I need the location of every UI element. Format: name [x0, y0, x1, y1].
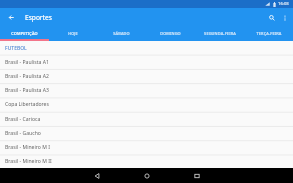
button[interactable]: Copa Libertadores — [0, 97, 293, 111]
button[interactable]: Brasil - Carioca — [0, 112, 293, 126]
staticText: Brasil - Paulista A1 — [5, 59, 49, 66]
button[interactable]: Back — [89, 168, 104, 183]
staticText: SEGUNDA-FEIRA — [204, 31, 236, 36]
button[interactable]: TERÇA-FEIRA — [244, 26, 293, 41]
staticText: HOJE — [68, 31, 78, 36]
staticText: COMPETIÇÃO — [11, 31, 38, 36]
button[interactable]: SÁBADO — [97, 26, 146, 41]
staticText: FUTEBOL — [5, 45, 27, 52]
staticText: SÁBADO — [113, 31, 130, 36]
staticText: DOMINGO — [160, 31, 181, 36]
staticText: Brasil - Paulista A3 — [5, 87, 49, 94]
button[interactable]: HOJE — [48, 26, 97, 41]
staticText: 16:03 — [278, 1, 289, 7]
button[interactable]: Brasil - Mineiro M II — [0, 154, 293, 168]
button[interactable]: Brasil - Paulista A1 — [0, 55, 293, 69]
button[interactable]: Brasil - Paulista A2 — [0, 69, 293, 83]
staticText: Brasil - Mineiro M I — [5, 144, 50, 151]
staticText: Brasil - Gaucho — [5, 130, 41, 137]
staticText: Brasil - Paulista A2 — [5, 73, 49, 80]
button[interactable]: SEGUNDA-FEIRA — [195, 26, 244, 41]
button[interactable]: Recents — [189, 168, 204, 183]
button[interactable]: Search — [263, 9, 280, 26]
staticText: Brasil - Carioca — [5, 116, 41, 123]
button[interactable]: More options — [276, 9, 293, 26]
button[interactable]: DOMINGO — [146, 26, 195, 41]
button[interactable]: Home — [139, 168, 154, 183]
staticText: TERÇA-FEIRA — [256, 31, 282, 36]
button[interactable]: Brasil - Gaucho — [0, 126, 293, 140]
button[interactable]: COMPETIÇÃO — [0, 26, 48, 41]
button[interactable]: Back — [3, 9, 20, 26]
staticText: Esportes — [25, 13, 52, 22]
button[interactable]: Brasil - Mineiro M I — [0, 140, 293, 154]
button[interactable]: Brasil - Paulista A3 — [0, 83, 293, 97]
staticText: Brasil - Mineiro M II — [5, 158, 52, 165]
staticText: Copa Libertadores — [5, 101, 49, 108]
